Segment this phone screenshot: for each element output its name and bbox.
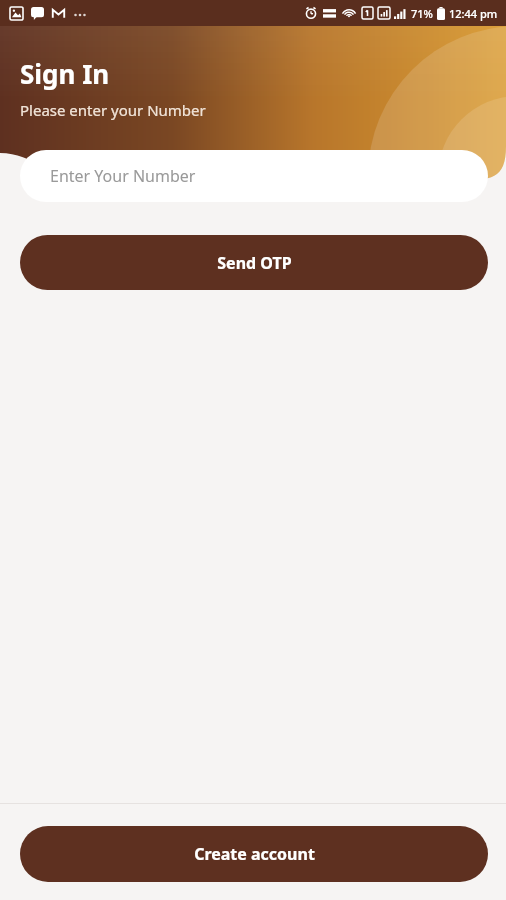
staticText: Create account (194, 843, 315, 865)
staticText: Sign In (20, 56, 110, 91)
staticText: Send OTP (217, 252, 292, 274)
staticText: Enter Your Number (50, 165, 196, 187)
button[interactable]: Send OTP (20, 235, 488, 290)
staticText: 71% (411, 6, 433, 21)
button[interactable]: Enter Your Number (20, 150, 488, 202)
staticText: Please enter your Number (20, 100, 206, 120)
button[interactable]: Create account (20, 826, 488, 882)
staticText: 12:44 pm (449, 6, 498, 21)
